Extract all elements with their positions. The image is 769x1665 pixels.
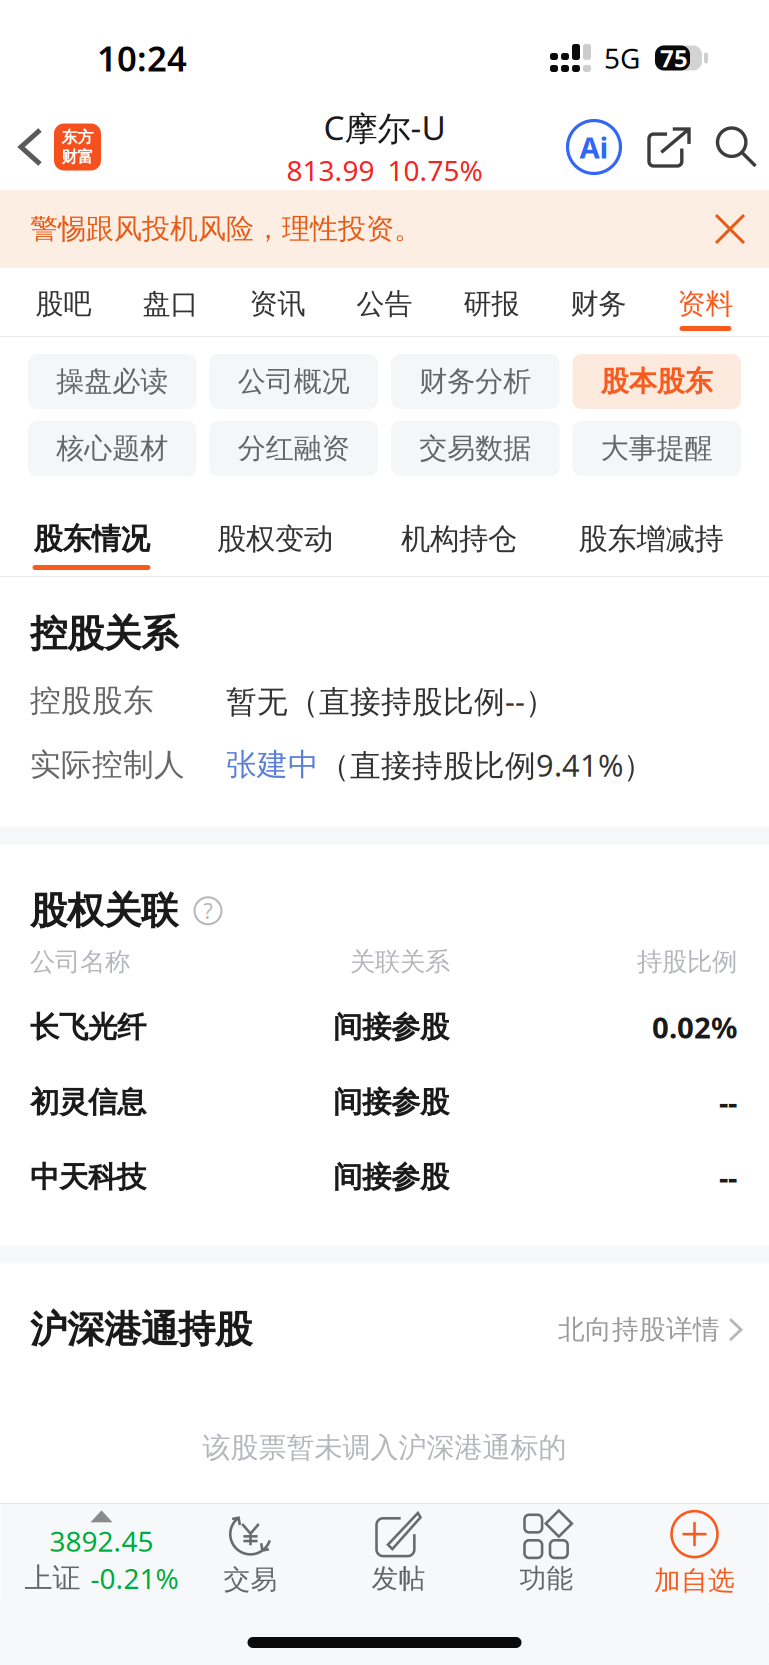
staticText: 财务 [570,287,626,321]
staticText: 控股股东 [30,682,154,720]
button[interactable]: 初灵信息 [0,1065,769,1140]
staticText: 间接参股 [333,1009,449,1045]
button[interactable]: 核心题材 [28,421,196,476]
button[interactable]: 操盘必读 [28,354,196,409]
staticText: 公司概况 [238,364,350,399]
staticText: 交易 [223,1563,277,1596]
button[interactable]: 北向持股详情 [558,1313,741,1346]
button[interactable]: 财务分析 [391,354,559,409]
staticText: 0.02% [652,1008,737,1047]
button[interactable]: 大事提醒 [572,421,741,476]
button[interactable]: 公告 [331,268,438,336]
button[interactable]: 机构持仓 [367,489,551,576]
staticText: 警惕跟风投机风险，理性投资。 [30,212,422,246]
staticText: 股权变动 [217,521,333,557]
button[interactable]: 股权变动 [183,489,367,576]
button[interactable]: 盘口 [117,268,224,336]
staticText: 机构持仓 [401,521,517,557]
staticText: 控股关系 [30,611,178,657]
button[interactable]: 分享 [635,104,704,190]
button[interactable]: 长飞光纤 [0,990,769,1065]
staticText: 股权关联 [30,888,178,934]
staticText: -0.21% [90,1559,178,1597]
staticText: 财务分析 [419,364,531,399]
button[interactable]: 公司概况 [209,354,378,409]
staticText: （直接持股比例9.41%） [319,744,654,785]
staticText: 张建中 [226,746,319,784]
button[interactable]: 返回 [0,104,54,190]
staticText: 关联关系 [350,946,450,977]
staticText: 该股票暂未调入沪深港通标的 [202,1431,566,1465]
button[interactable]: 交易数据 [391,421,559,476]
button[interactable]: 功能 [472,1512,620,1595]
staticText: 财富 [61,147,93,167]
staticText: 盘口 [142,287,198,321]
staticText: -- [719,1083,737,1122]
staticText: 公司名称 [30,946,130,977]
staticText: 交易数据 [419,431,531,466]
button[interactable]: 资讯 [224,268,331,336]
staticText: 长飞光纤 [30,1009,146,1045]
staticText: 大事提醒 [601,431,713,466]
button[interactable]: 说明 [190,893,226,929]
staticText: -- [719,1158,737,1197]
staticText: 股东增减持 [578,521,723,557]
button[interactable]: 股东增减持 [551,489,751,576]
staticText: 发帖 [371,1562,425,1595]
staticText: 分红融资 [238,431,350,466]
staticText: 沪深港通持股 [30,1307,252,1353]
button[interactable]: 股吧 [10,268,117,336]
staticText: 股吧 [35,287,91,321]
staticText: 间接参股 [333,1159,449,1195]
staticText: 加自选 [654,1564,735,1597]
staticText: Ai [579,127,608,166]
staticText: ? [203,897,212,925]
staticText: 75 [660,42,688,74]
button[interactable]: 搜索 [704,104,769,190]
staticText: 北向持股详情 [558,1313,720,1346]
staticText: 东方 [61,127,93,147]
button[interactable]: 实际控制人 [0,733,769,797]
staticText: 中天科技 [30,1159,146,1195]
staticText: 初灵信息 [30,1084,146,1120]
staticText: 研报 [463,287,519,321]
staticText: 股东情况 [33,521,149,557]
button[interactable]: 股东情况 [0,489,183,576]
staticText: 10:24 [97,35,187,81]
staticText: 持股比例 [637,946,737,977]
staticText: 实际控制人 [30,746,185,784]
button[interactable]: 关闭 [691,190,769,268]
button[interactable]: 东方财富 [54,123,101,170]
button[interactable]: 研报 [438,268,545,336]
button[interactable]: 加自选 [620,1510,768,1597]
button[interactable]: 股本股东 [572,354,741,409]
staticText: 813.99 [286,152,374,189]
staticText: C摩尔-U [323,105,445,150]
button[interactable]: 3892.45 [0,1510,176,1597]
staticText: 5G [604,39,640,77]
staticText: 操盘必读 [56,364,168,399]
staticText: 间接参股 [333,1084,449,1120]
staticText: 10.75% [387,152,482,189]
button[interactable]: 发帖 [324,1512,472,1595]
staticText: 资料 [677,287,733,321]
staticText: 上证 [24,1561,80,1595]
staticText: 公告 [356,287,412,321]
button[interactable]: 资料 [652,268,759,336]
staticText: 暂无（直接持股比例--） [226,680,556,721]
button[interactable]: 分红融资 [209,421,378,476]
staticText: 3892.45 [49,1522,153,1559]
staticText: 功能 [519,1562,573,1595]
button[interactable]: 财务 [545,268,652,336]
button[interactable]: AI 助手 [553,104,635,190]
button[interactable]: 交易 [176,1511,324,1596]
staticText: 核心题材 [56,431,168,466]
staticText: 股本股东 [601,364,713,399]
button[interactable]: 中天科技 [0,1140,769,1215]
staticText: 资讯 [249,287,305,321]
